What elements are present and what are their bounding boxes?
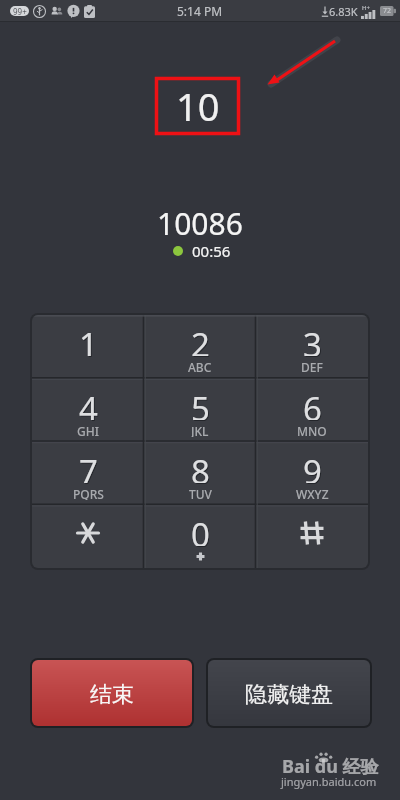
staticText: 7 (79, 449, 98, 483)
staticText: 2 (192, 323, 211, 357)
staticText: 0 (191, 512, 210, 546)
button[interactable]: 隐藏键盘 (208, 660, 370, 726)
staticText: 1 (80, 323, 99, 357)
button[interactable]: 5 (144, 379, 256, 442)
staticText: 5 (192, 387, 211, 421)
button[interactable]: star (32, 505, 144, 568)
staticText: 隐藏键盘 (245, 681, 333, 709)
staticText: 结束 (90, 681, 134, 709)
button[interactable]: 3 (256, 315, 368, 379)
button[interactable]: 结束 (32, 660, 192, 726)
button[interactable]: 8 (144, 442, 256, 505)
staticText: 8 (191, 449, 210, 483)
staticText: 1 (79, 322, 98, 356)
staticText: 0 (192, 513, 211, 547)
staticText: 99+ (13, 6, 27, 16)
staticText: 4 (79, 386, 98, 420)
staticText: 2 (191, 322, 210, 356)
staticText: 00:56 (192, 241, 231, 261)
staticText: 5:14 PM (177, 3, 223, 19)
staticText: Bai du 经验 (282, 754, 379, 779)
staticText: 72 (383, 6, 392, 16)
staticText: 6.83K (329, 4, 358, 19)
staticText: 9 (304, 450, 323, 484)
staticText: GHI (77, 423, 99, 437)
staticText: 5 (191, 386, 210, 420)
button[interactable]: 6 (256, 379, 368, 442)
button[interactable]: 7 (32, 442, 144, 505)
staticText: 9 (303, 449, 322, 483)
button[interactable]: 1 (32, 315, 144, 379)
staticText: TUV (189, 486, 212, 500)
staticText: ABC (188, 359, 212, 373)
staticText: H+ (362, 4, 370, 12)
staticText: 6 (304, 387, 323, 421)
staticText: MNO (297, 423, 327, 437)
staticText: DEF (301, 359, 323, 373)
button[interactable]: pound (256, 505, 368, 568)
staticText: 3 (303, 322, 322, 356)
staticText: WXYZ (296, 486, 329, 500)
button[interactable]: 0 (144, 505, 256, 568)
staticText: 8 (192, 450, 211, 484)
staticText: 10 (176, 80, 220, 132)
staticText: 6 (303, 386, 322, 420)
staticText: 3 (304, 323, 323, 357)
button[interactable]: 2 (144, 315, 256, 379)
staticText: 7 (80, 450, 99, 484)
button[interactable]: 4 (32, 379, 144, 442)
staticText: 4 (80, 387, 99, 421)
staticText: 10086 (157, 203, 243, 235)
staticText: PQRS (73, 486, 104, 500)
staticText: JKL (191, 423, 209, 437)
button[interactable]: 9 (256, 442, 368, 505)
staticText: jingyan.baidu.com (281, 774, 377, 789)
